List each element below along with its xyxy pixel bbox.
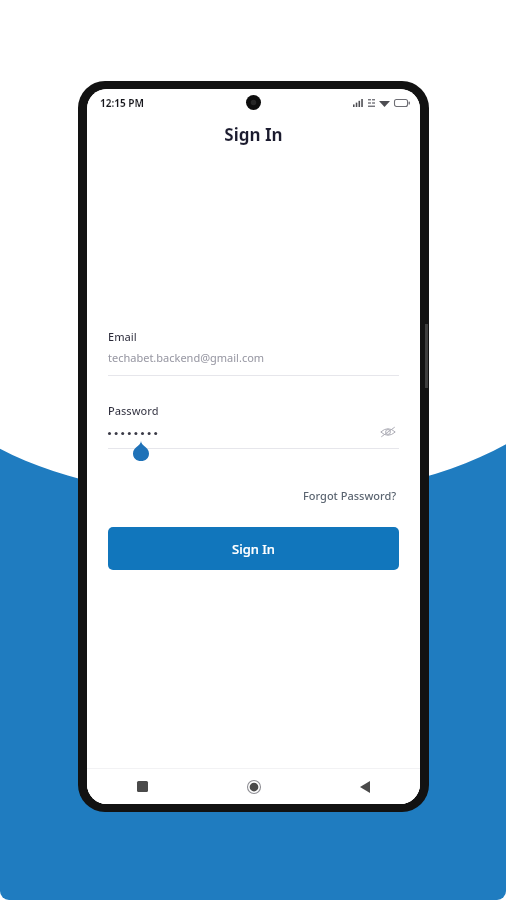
staticText: Password <box>108 403 159 418</box>
button[interactable]: Recent apps <box>87 769 198 804</box>
staticText: Forgot Password? <box>303 488 397 503</box>
staticText: Email <box>108 329 137 344</box>
button[interactable]: Forgot Password? <box>301 485 399 506</box>
button[interactable]: Home <box>198 769 309 804</box>
staticText: 12:15 PM <box>100 96 144 110</box>
button[interactable]: Show password <box>377 421 399 443</box>
button[interactable]: Back <box>309 769 420 804</box>
staticText: techabet.backend@gmail.com <box>108 350 265 365</box>
button[interactable]: Sign In <box>108 527 399 570</box>
staticText: Sign In <box>224 123 283 146</box>
staticText: Sign In <box>232 540 276 558</box>
